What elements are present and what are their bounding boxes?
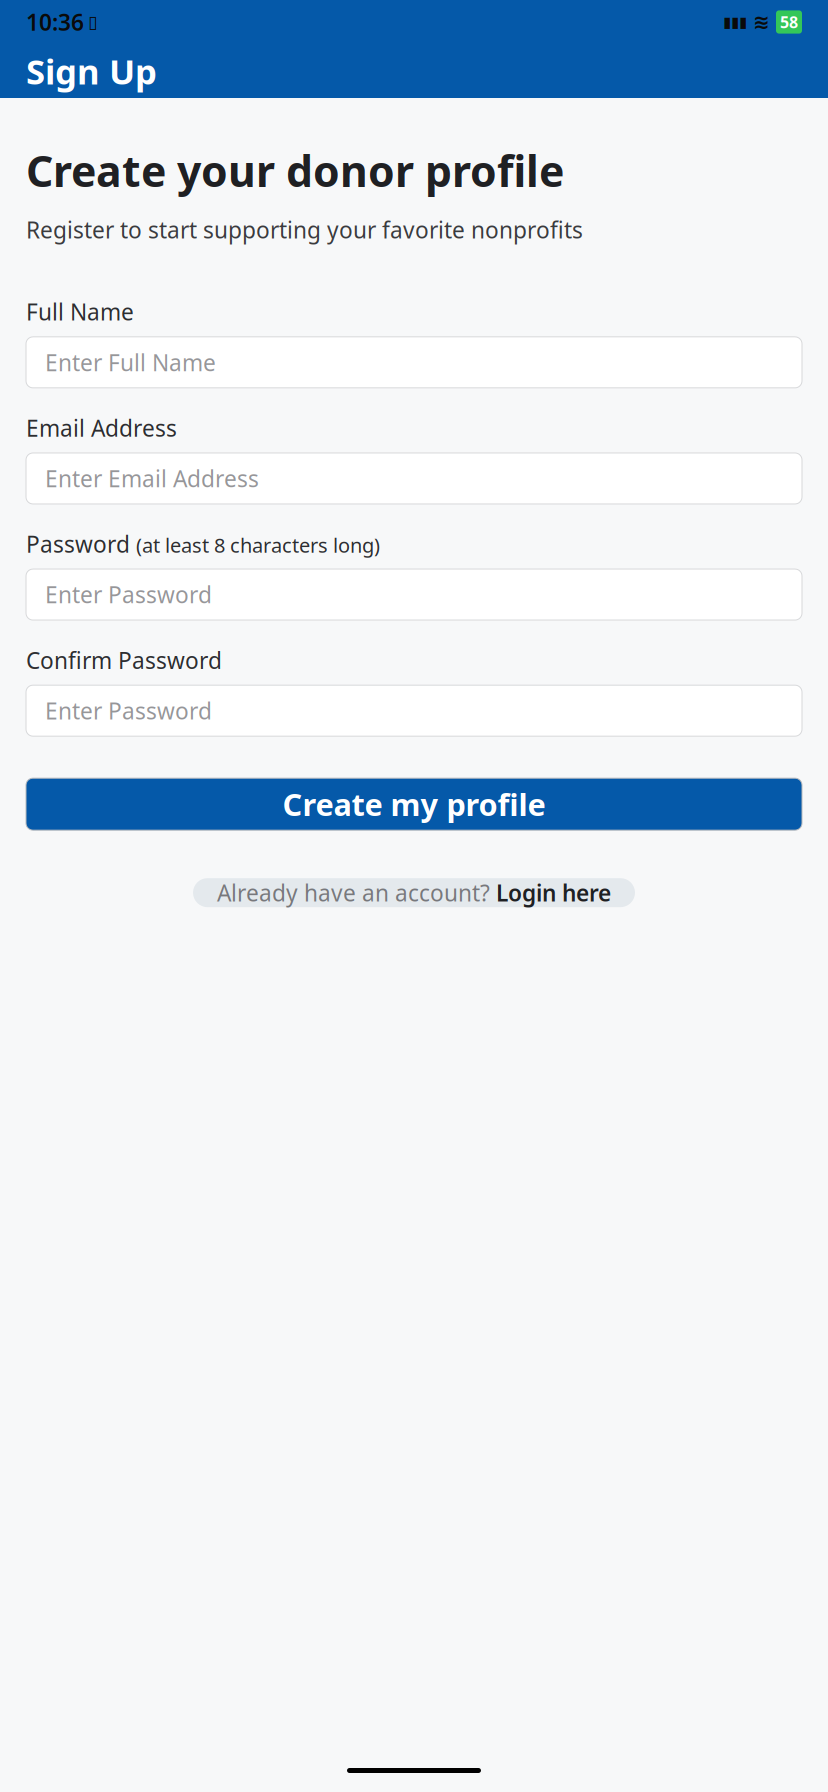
button[interactable]: Enter Full Name bbox=[26, 337, 802, 388]
button[interactable]: Create my profile bbox=[26, 778, 802, 830]
staticText: Create my profile bbox=[282, 784, 545, 824]
staticText: Full Name bbox=[26, 297, 134, 327]
staticText: Register to start supporting your favori… bbox=[26, 215, 583, 245]
staticText: Already have an account? bbox=[217, 878, 496, 908]
staticText: Enter Email Address bbox=[45, 463, 259, 493]
button[interactable]: Enter Password bbox=[26, 685, 802, 736]
staticText: Email Address bbox=[26, 413, 177, 443]
staticText: Password bbox=[26, 529, 130, 559]
staticText: Enter Full Name bbox=[45, 347, 216, 377]
staticText: ≋ bbox=[753, 11, 770, 33]
button[interactable]: Enter Password bbox=[26, 569, 802, 620]
staticText: Confirm Password bbox=[26, 645, 222, 675]
staticText: 58 bbox=[780, 11, 798, 33]
staticText: ▯ bbox=[88, 12, 98, 32]
staticText: Enter Password bbox=[45, 696, 212, 726]
button[interactable]: Already have an account? bbox=[193, 878, 635, 907]
staticText: ▮▮▮ bbox=[723, 14, 747, 30]
button[interactable]: Enter Email Address bbox=[26, 453, 802, 504]
staticText: Login here bbox=[496, 878, 611, 908]
staticText: Enter Password bbox=[45, 579, 212, 610]
staticText: Sign Up bbox=[26, 48, 157, 94]
staticText: (at least 8 characters long) bbox=[136, 532, 380, 558]
staticText: Create your donor profile bbox=[26, 142, 564, 199]
staticText: 10:36 bbox=[26, 7, 84, 37]
